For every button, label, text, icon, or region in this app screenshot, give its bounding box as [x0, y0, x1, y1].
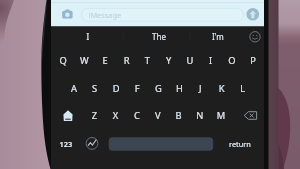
button[interactable] — [0, 0, 300, 169]
